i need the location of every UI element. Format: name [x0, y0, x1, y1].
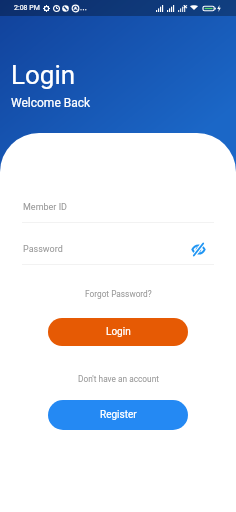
staticText: Password: [23, 244, 63, 255]
staticText: Member ID: [23, 202, 67, 213]
staticText: 2:08 PM: [14, 4, 40, 12]
staticText: Don't have an account: [78, 374, 159, 384]
button[interactable]: Forgot Password?: [83, 287, 154, 301]
button[interactable]: Show password: [188, 239, 208, 259]
staticText: Login: [11, 60, 76, 90]
staticText: Login: [106, 326, 131, 338]
button[interactable]: Register: [48, 400, 188, 430]
button[interactable]: Login: [48, 318, 188, 346]
staticText: Register: [100, 409, 137, 421]
staticText: Welcome Back: [11, 96, 91, 110]
